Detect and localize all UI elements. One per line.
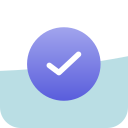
button[interactable]: Done [0,0,128,128]
